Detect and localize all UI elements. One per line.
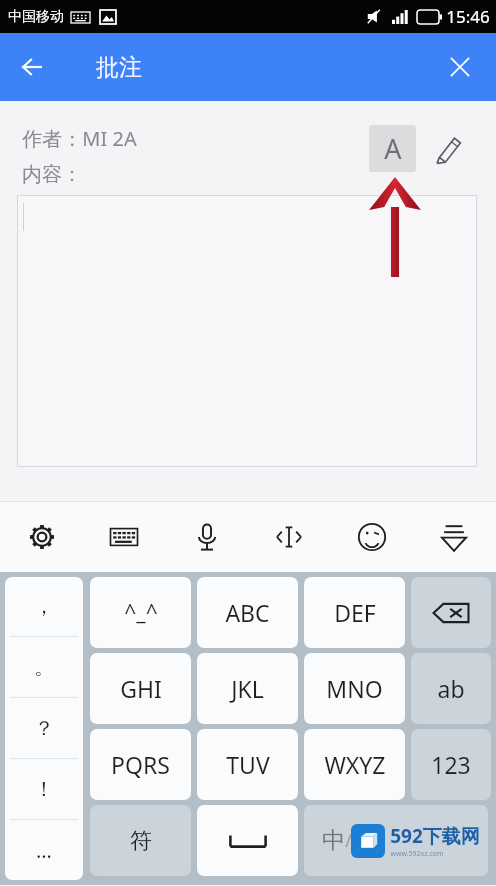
staticText: TUV: [226, 749, 270, 780]
button[interactable]: Settings: [14, 509, 70, 565]
button[interactable]: [17, 195, 477, 467]
staticText: JKL: [231, 673, 264, 704]
button[interactable]: ABC: [197, 577, 298, 648]
staticText: 123: [431, 749, 471, 780]
button[interactable]: …: [5, 820, 83, 880]
button[interactable]: ，: [5, 577, 83, 636]
button[interactable]: 123: [411, 729, 491, 800]
button[interactable]: Text style: [369, 125, 416, 172]
button[interactable]: PQRS: [90, 729, 191, 800]
staticText: 批注: [96, 53, 142, 82]
staticText: ^_^: [124, 598, 158, 627]
staticText: www.592xz.com: [390, 849, 444, 859]
button[interactable]: Edit: [428, 128, 470, 170]
staticText: ，: [34, 594, 54, 619]
button[interactable]: Switch Chinese English: [304, 805, 488, 876]
button[interactable]: Backspace: [411, 577, 491, 648]
button[interactable]: DEF: [304, 577, 405, 648]
staticText: 15:46: [446, 5, 490, 28]
button[interactable]: Emoji: [344, 509, 400, 565]
staticText: GHI: [120, 673, 162, 704]
staticText: 符: [130, 827, 152, 855]
staticText: 内容：: [22, 162, 82, 187]
button[interactable]: 符: [90, 805, 191, 876]
button[interactable]: ！: [5, 759, 83, 819]
button[interactable]: WXYZ: [304, 729, 405, 800]
staticText: A: [384, 130, 402, 167]
button[interactable]: Hide keyboard: [426, 509, 482, 565]
button[interactable]: Space: [197, 805, 298, 876]
button[interactable]: GHI: [90, 653, 191, 724]
staticText: /: [345, 828, 352, 853]
button[interactable]: ab: [411, 653, 491, 724]
staticText: ab: [437, 673, 465, 704]
button[interactable]: ？: [5, 698, 83, 758]
button[interactable]: JKL: [197, 653, 298, 724]
staticText: 中国移动: [8, 8, 64, 26]
staticText: ABC: [225, 597, 270, 628]
button[interactable]: Close: [436, 43, 484, 91]
button[interactable]: MNO: [304, 653, 405, 724]
staticText: MNO: [326, 673, 383, 704]
staticText: PQRS: [111, 749, 170, 780]
button[interactable]: Keyboard layout: [96, 509, 152, 565]
staticText: 中: [322, 826, 345, 855]
button[interactable]: Move cursor: [261, 509, 317, 565]
staticText: 592下载网: [390, 823, 480, 849]
staticText: DEF: [334, 597, 376, 628]
staticText: ！: [34, 777, 54, 802]
button[interactable]: Voice input: [179, 509, 235, 565]
staticText: 英: [352, 831, 367, 850]
button[interactable]: ^_^: [90, 577, 191, 648]
button[interactable]: 。: [5, 637, 83, 697]
staticText: 。: [34, 655, 54, 680]
staticText: …: [36, 837, 52, 864]
staticText: ？: [34, 716, 54, 741]
button[interactable]: Back: [8, 43, 56, 91]
button[interactable]: TUV: [197, 729, 298, 800]
staticText: WXYZ: [324, 749, 386, 780]
staticText: 作者：MI 2A: [22, 125, 137, 152]
